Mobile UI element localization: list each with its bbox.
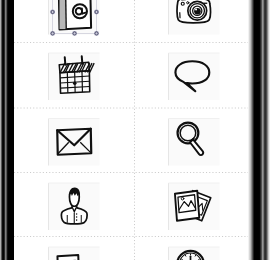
button[interactable]: App icon grid (0, 0, 276, 260)
